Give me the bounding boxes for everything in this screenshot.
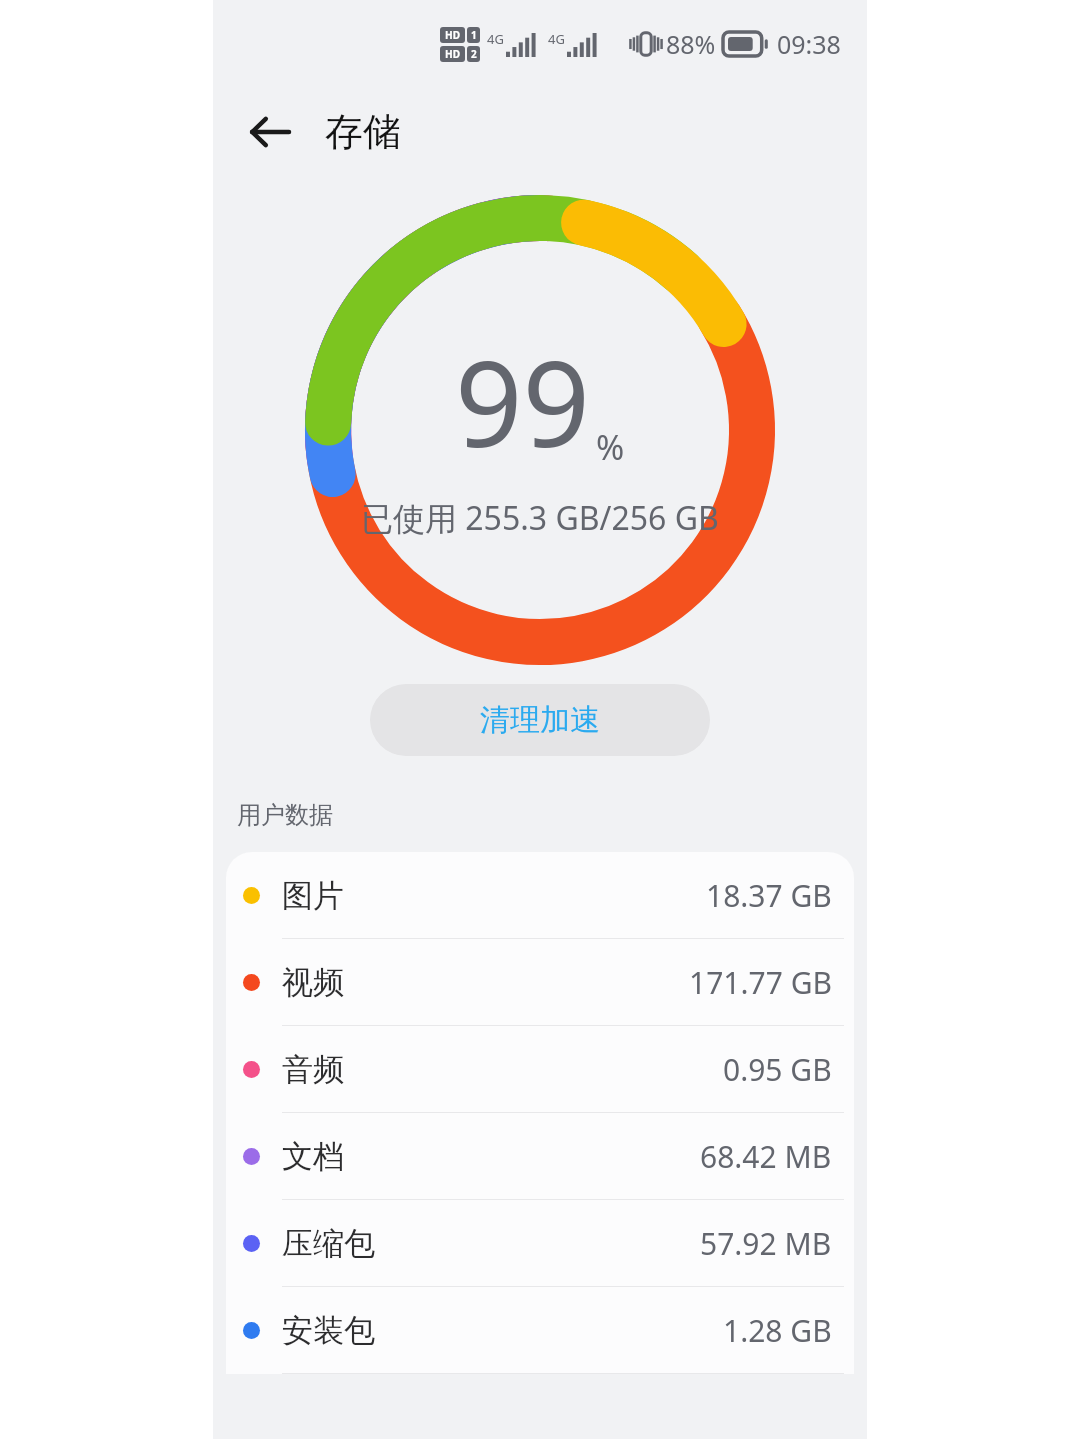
staticText: 1 (471, 28, 477, 42)
staticText: 2 (471, 47, 477, 61)
staticText: 57.92 MB (700, 1223, 832, 1264)
staticText: 清理加速 (480, 701, 600, 739)
button[interactable]: 文档 (226, 1113, 854, 1199)
staticText: 4G (487, 30, 504, 48)
button[interactable]: 视频 (226, 939, 854, 1025)
staticText: 88% (666, 27, 716, 61)
staticText: % (596, 424, 625, 470)
staticText: HD (445, 28, 460, 42)
staticText: 用户数据 (237, 800, 333, 830)
staticText: 18.37 GB (706, 875, 832, 916)
staticText: 99 (455, 321, 590, 482)
staticText: 68.42 MB (700, 1136, 832, 1177)
staticText: HD (445, 47, 460, 61)
staticText: 压缩包 (282, 1224, 375, 1263)
button[interactable]: Back (237, 100, 301, 164)
staticText: 视频 (282, 963, 344, 1002)
staticText: 安装包 (282, 1311, 375, 1350)
staticText: 已使用 255.3 GB/256 GB (361, 496, 719, 540)
staticText: 文档 (282, 1137, 344, 1176)
staticText: 171.77 GB (689, 962, 832, 1003)
staticText: 4G (548, 30, 565, 48)
button[interactable]: 安装包 (226, 1287, 854, 1373)
button[interactable]: 图片 (226, 852, 854, 938)
button[interactable]: 音频 (226, 1026, 854, 1112)
staticText: 0.95 GB (723, 1049, 832, 1090)
staticText: 存储 (325, 108, 401, 156)
staticText: 1.28 GB (723, 1310, 832, 1351)
staticText: 图片 (282, 876, 344, 915)
staticText: 09:38 (777, 27, 841, 61)
staticText: 音频 (282, 1050, 344, 1089)
button[interactable]: 清理加速 (370, 684, 710, 756)
button[interactable]: 压缩包 (226, 1200, 854, 1286)
